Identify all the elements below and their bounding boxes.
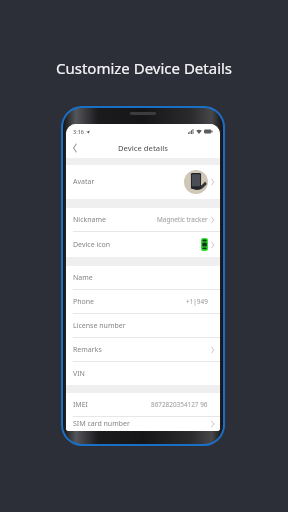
- button[interactable]: Back: [66, 139, 84, 157]
- button[interactable]: Avatar: [66, 165, 220, 199]
- staticText: VIN: [73, 369, 85, 379]
- button[interactable]: Remarks: [66, 338, 220, 361]
- staticText: Nickname: [73, 215, 106, 225]
- staticText: Device details: [118, 143, 168, 153]
- button[interactable]: Device icon: [66, 232, 220, 257]
- staticText: Avatar: [73, 177, 95, 187]
- button[interactable]: Phone: [66, 290, 220, 313]
- staticText: 3:16: [73, 128, 84, 135]
- staticText: Remarks: [73, 345, 102, 355]
- staticText: Magnetic tracker: [157, 215, 208, 224]
- button[interactable]: Name: [66, 266, 220, 289]
- staticText: IMEI: [73, 400, 88, 410]
- staticText: 8672820354127 96: [151, 400, 208, 409]
- staticText: Phone: [73, 297, 95, 307]
- staticText: Customize Device Details: [56, 58, 233, 78]
- button[interactable]: VIN: [66, 362, 220, 385]
- button[interactable]: SIM card number: [66, 417, 220, 431]
- button[interactable]: License number: [66, 314, 220, 337]
- button[interactable]: Nickname: [66, 208, 220, 231]
- staticText: SIM card number: [73, 419, 130, 429]
- staticText: +1|949: [186, 297, 208, 306]
- staticText: Device icon: [73, 240, 111, 250]
- staticText: License number: [73, 321, 126, 331]
- button[interactable]: IMEI: [66, 393, 220, 416]
- staticText: Name: [73, 273, 93, 283]
